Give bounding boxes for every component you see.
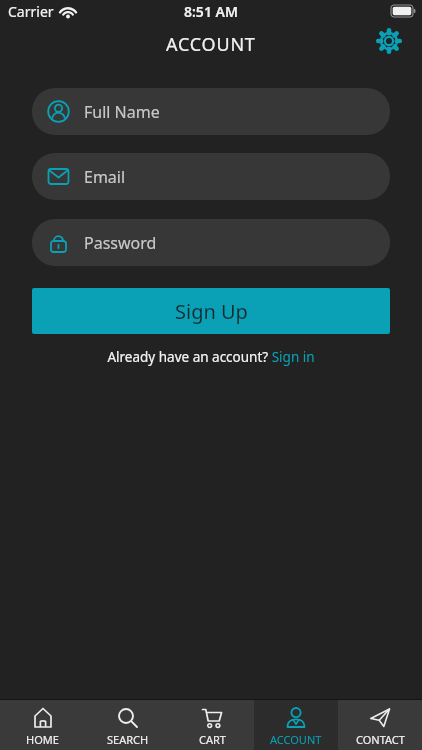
staticText: CART: [199, 732, 226, 747]
staticText: HOME: [26, 732, 59, 747]
button[interactable]: CONTACT: [338, 700, 422, 750]
button[interactable]: Full Name: [32, 88, 390, 135]
button[interactable]: [376, 28, 402, 54]
staticText: CONTACT: [356, 732, 405, 747]
staticText: Full Name: [84, 101, 160, 123]
staticText: ACCOUNT: [270, 732, 322, 747]
button[interactable]: Already have an account? Sign in: [107, 348, 315, 366]
staticText: 8:51 AM: [184, 2, 238, 21]
button[interactable]: Email: [32, 153, 390, 200]
staticText: Password: [84, 232, 157, 254]
button[interactable]: HOME: [0, 700, 85, 750]
button[interactable]: Password: [32, 219, 390, 266]
button[interactable]: ACCOUNT: [254, 700, 338, 750]
staticText: Carrier: [8, 2, 54, 21]
staticText: ACCOUNT: [166, 32, 256, 57]
staticText: Sign Up: [175, 298, 248, 325]
button[interactable]: CART: [170, 700, 254, 750]
button[interactable]: Sign Up: [32, 288, 390, 334]
button[interactable]: SEARCH: [85, 700, 170, 750]
staticText: SEARCH: [107, 732, 149, 747]
staticText: Email: [84, 166, 126, 188]
